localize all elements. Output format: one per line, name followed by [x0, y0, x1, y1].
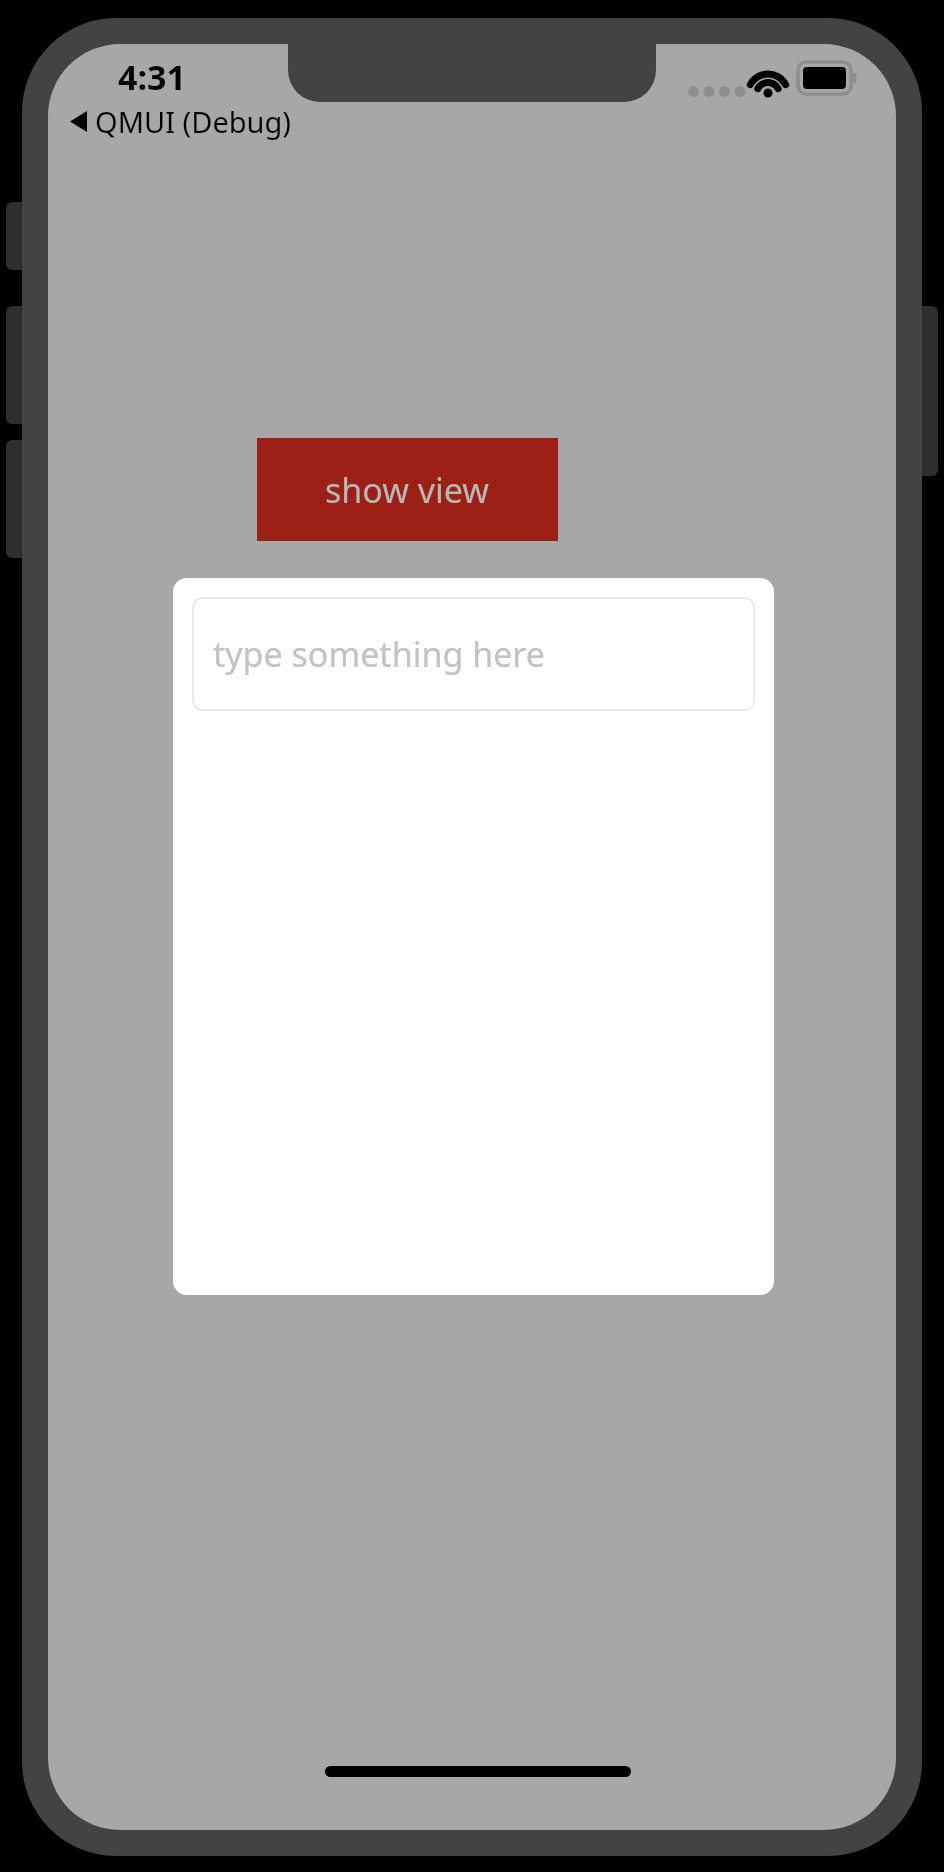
button[interactable]: QMUI (Debug): [62, 98, 300, 144]
button[interactable]: type something here: [192, 597, 755, 711]
staticText: show view: [325, 467, 490, 513]
staticText: QMUI (Debug): [95, 102, 292, 141]
button[interactable]: show view: [257, 438, 558, 541]
staticText: 4:31: [118, 54, 186, 100]
other: Home indicator: [325, 1766, 631, 1777]
staticText: type something here: [213, 631, 545, 677]
